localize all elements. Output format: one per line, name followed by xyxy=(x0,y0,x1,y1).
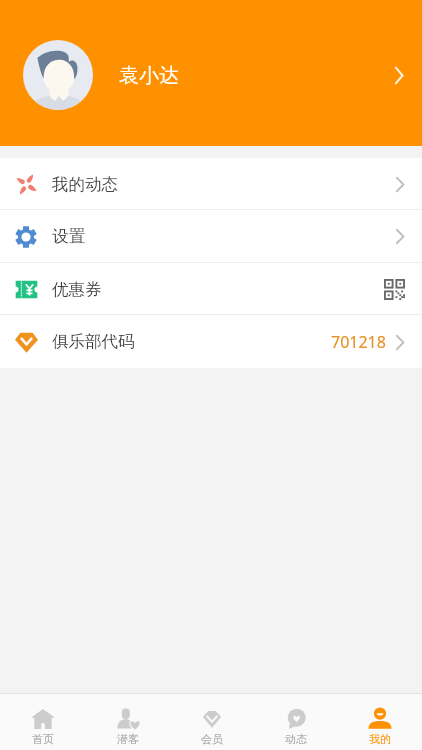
staticText: 潜客 xyxy=(117,732,139,746)
button[interactable]: 动态 xyxy=(254,694,338,750)
button[interactable]: 优惠券 xyxy=(0,263,422,315)
staticText: 优惠券 xyxy=(52,279,102,300)
button[interactable]: 潜客 xyxy=(85,694,170,750)
staticText: 首页 xyxy=(32,732,54,746)
staticText: 动态 xyxy=(285,732,307,746)
staticText: 我的动态 xyxy=(52,174,118,195)
button[interactable]: 我的 xyxy=(338,694,422,750)
button[interactable]: 扫描二维码 xyxy=(384,279,405,300)
staticText: 袁小达 xyxy=(119,63,179,88)
button[interactable]: 袁小达 xyxy=(0,0,422,146)
button[interactable]: 俱乐部代码 xyxy=(0,315,422,368)
button[interactable]: 会员 xyxy=(170,694,254,750)
staticText: 会员 xyxy=(201,732,223,746)
staticText: 俱乐部代码 xyxy=(52,331,135,352)
staticText: 701218 xyxy=(331,331,386,353)
button[interactable]: 首页 xyxy=(0,694,85,750)
staticText: 我的 xyxy=(369,732,391,746)
button[interactable]: 我的动态 xyxy=(0,158,422,210)
button[interactable]: 设置 xyxy=(0,210,422,263)
staticText: 设置 xyxy=(52,226,85,247)
